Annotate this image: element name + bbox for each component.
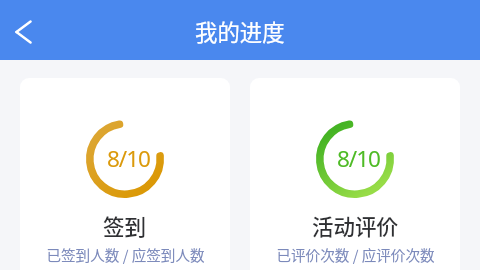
button[interactable]: 8/10	[250, 78, 460, 270]
staticText: 已评价次数 / 应评价次数	[276, 244, 435, 265]
button[interactable]: Back	[0, 9, 46, 55]
staticText: 我的进度	[195, 15, 285, 47]
staticText: 8/10	[337, 143, 380, 174]
staticText: 已签到人数 / 应签到人数	[46, 244, 205, 265]
staticText: 签到	[103, 210, 147, 241]
staticText: 8/10	[107, 143, 150, 174]
staticText: 活动评价	[312, 210, 399, 241]
button[interactable]: 8/10	[20, 78, 230, 270]
